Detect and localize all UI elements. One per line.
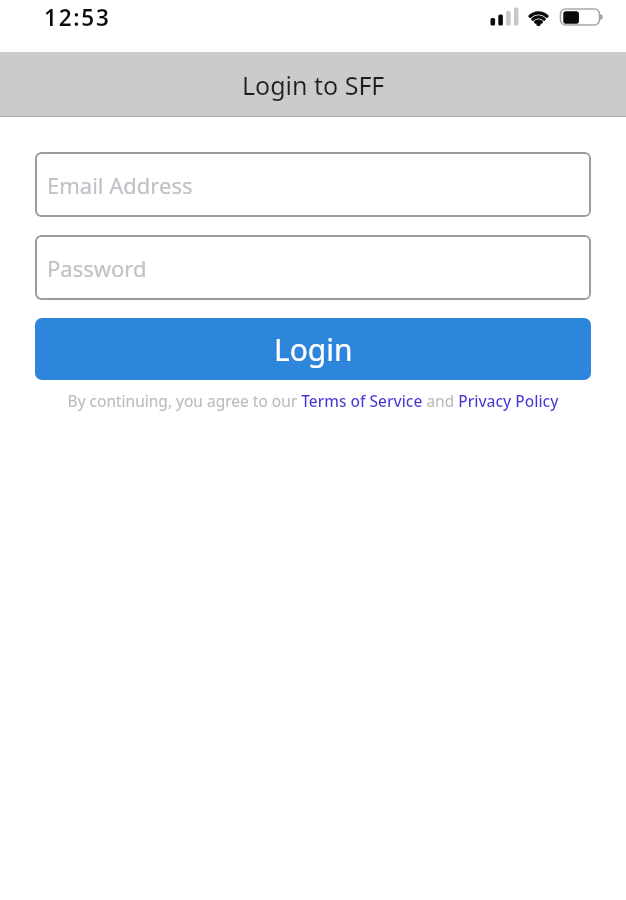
staticText: Password — [47, 253, 147, 283]
staticText: 12:53 — [44, 2, 111, 33]
button[interactable]: Email Address — [35, 152, 591, 217]
staticText: Login — [274, 329, 353, 370]
button[interactable]: Password — [35, 235, 591, 300]
button[interactable]: Login — [35, 318, 591, 380]
staticText: Email Address — [47, 170, 193, 200]
staticText: Login to SFF — [242, 68, 385, 102]
button[interactable]: By continuing, you agree to our Terms of… — [0, 390, 626, 411]
